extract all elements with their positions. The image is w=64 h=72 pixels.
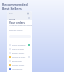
staticText: 9:41 bbox=[9, 12, 13, 14]
staticText: Snacks & nuts bbox=[12, 56, 26, 59]
staticText: Your orders bbox=[9, 21, 25, 25]
button[interactable]: Frozen foods bbox=[9, 63, 30, 67]
staticText: Household bbox=[12, 68, 23, 71]
button[interactable]: Store bbox=[9, 16, 30, 20]
staticText: Fresh produce bbox=[12, 44, 26, 47]
staticText: Best Sellers bbox=[2, 6, 22, 11]
button[interactable]: Dairy & eggs bbox=[9, 47, 30, 51]
staticText: Frozen foods bbox=[12, 64, 25, 67]
button[interactable]: Beverages bbox=[9, 59, 30, 63]
button[interactable]: Snacks & nuts bbox=[9, 55, 30, 59]
button[interactable]: Bakery items bbox=[9, 51, 30, 55]
staticText: Delivery today bbox=[9, 29, 23, 32]
staticText: ▮▮ bbox=[27, 12, 29, 14]
staticText: 12 items ready for pickup bbox=[9, 24, 32, 27]
button[interactable]: Household bbox=[9, 67, 30, 71]
staticText: Store bbox=[9, 17, 16, 20]
staticText: Beverages bbox=[12, 60, 22, 63]
staticText: Bakery items bbox=[12, 52, 25, 55]
staticText: Recommended bbox=[2, 2, 28, 7]
staticText: Dairy & eggs bbox=[12, 48, 24, 51]
button[interactable]: Fresh produce bbox=[9, 43, 30, 47]
